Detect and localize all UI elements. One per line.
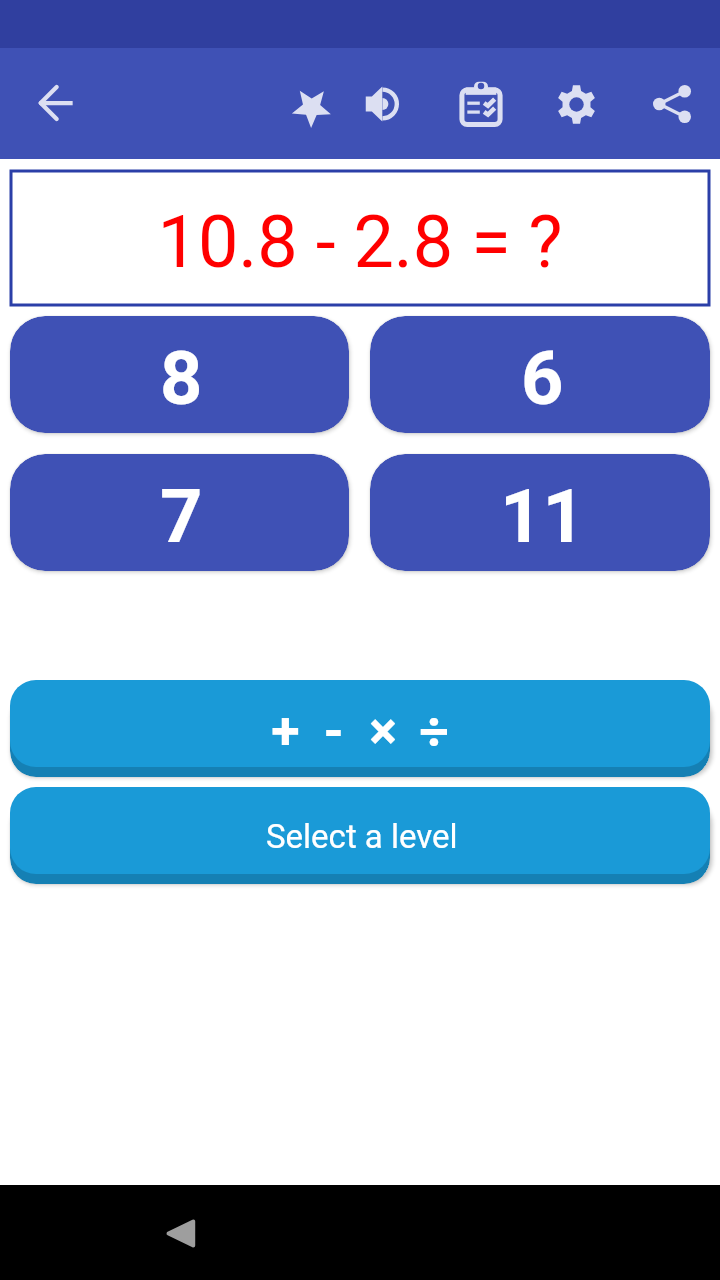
button[interactable]: Select a level	[10, 787, 710, 874]
button[interactable]: Back	[8, 55, 104, 151]
staticText: Select a level	[266, 817, 458, 856]
button[interactable]: 6	[370, 316, 710, 433]
staticText: 8	[160, 335, 203, 422]
button[interactable]: Operations	[10, 680, 710, 767]
button[interactable]: 11	[370, 454, 710, 571]
button[interactable]: 10.8 - 2.8 = ?	[10, 170, 710, 306]
button[interactable]: 8	[10, 316, 349, 433]
staticText: 7	[160, 473, 203, 560]
staticText: ×	[369, 701, 397, 762]
button[interactable]: Settings	[528, 55, 624, 151]
button[interactable]: 7	[10, 454, 349, 571]
button[interactable]: Back	[140, 1193, 220, 1273]
button[interactable]: Sound	[336, 55, 432, 151]
staticText: 6	[521, 335, 564, 422]
staticText: 11	[500, 473, 585, 560]
staticText: 10.8 - 2.8 = ?	[157, 200, 563, 284]
button[interactable]: Star	[263, 55, 359, 151]
staticText: -	[323, 701, 344, 762]
button[interactable]: Share	[624, 55, 720, 151]
button[interactable]: Results	[433, 55, 529, 151]
staticText: +	[271, 701, 300, 762]
staticText: ÷	[419, 701, 449, 762]
